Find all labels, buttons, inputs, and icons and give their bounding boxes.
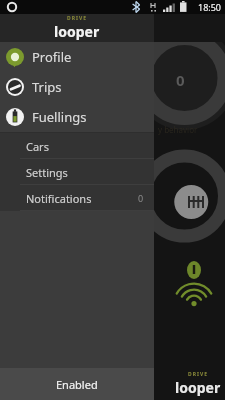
button[interactable]: Cars bbox=[0, 133, 154, 159]
staticText: Trips bbox=[32, 78, 62, 96]
button[interactable]: Enabled bbox=[0, 368, 154, 400]
button[interactable]: Notifications bbox=[0, 185, 154, 211]
button[interactable]: Trips bbox=[0, 72, 154, 102]
button[interactable]: Fuellings bbox=[0, 102, 154, 132]
staticText: looper bbox=[54, 22, 100, 41]
staticText: DRIVE bbox=[67, 15, 87, 22]
staticText: Cars bbox=[26, 139, 49, 154]
button[interactable]: Profile bbox=[0, 42, 154, 72]
staticText: Profile bbox=[32, 48, 72, 66]
staticText: Settings bbox=[26, 165, 68, 180]
staticText: 18:50 bbox=[198, 1, 222, 13]
staticText: Notifications bbox=[26, 191, 92, 206]
staticText: 0 bbox=[176, 70, 185, 90]
staticText: Fuellings bbox=[32, 108, 87, 126]
staticText: Enabled bbox=[56, 377, 98, 392]
staticText: y behavior bbox=[158, 124, 198, 135]
staticText: DRIVE bbox=[188, 371, 208, 378]
button[interactable]: Settings bbox=[0, 159, 154, 185]
staticText: looper bbox=[175, 378, 221, 397]
staticText: 0 bbox=[138, 192, 144, 204]
